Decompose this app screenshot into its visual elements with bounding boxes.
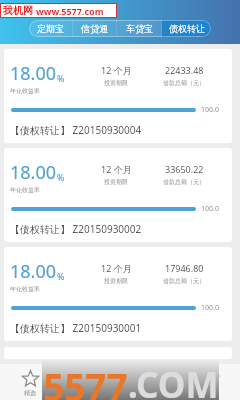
button[interactable]: 18.00 — [4, 49, 232, 143]
staticText: 借款总额（元） — [163, 178, 205, 186]
button[interactable]: 信贷通 — [73, 20, 116, 37]
staticText: 100.0 — [201, 204, 219, 214]
staticText: 12 个月 — [101, 64, 132, 76]
button[interactable]: 车贷宝 — [117, 20, 161, 37]
staticText: www.5577.com — [36, 5, 104, 17]
button[interactable]: 我的 — [180, 364, 240, 400]
staticText: 债权转让 — [169, 23, 205, 34]
staticText: .COM — [128, 361, 219, 400]
staticText: 我的 — [204, 389, 216, 397]
staticText: 车贷宝 — [126, 23, 153, 34]
staticText: % — [57, 171, 65, 183]
staticText: Z20150930001 — [70, 321, 142, 335]
staticText: 我机网 — [3, 4, 33, 17]
staticText: 12 个月 — [101, 163, 132, 175]
staticText: 定期宝 — [37, 23, 64, 34]
button[interactable]: 18.00 — [4, 148, 232, 242]
staticText: 年化收益率 — [10, 285, 40, 293]
button[interactable]: 18.00 — [4, 247, 232, 341]
other: 我的 — [202, 370, 219, 387]
button[interactable]: 精选 — [0, 364, 60, 400]
staticText: 年化收益率 — [10, 87, 40, 95]
staticText: 精选 — [24, 389, 36, 397]
staticText: Z20150930002 — [70, 222, 142, 236]
staticText: 投资期限 — [104, 277, 128, 285]
staticText: 【债权转让】 — [10, 124, 70, 137]
staticText: 发现 — [144, 389, 156, 397]
staticText: 33650.22 — [165, 163, 204, 175]
staticText: Z20150930004 — [70, 123, 142, 137]
other: 理财 — [82, 370, 99, 387]
staticText: 借款总额（元） — [163, 79, 205, 87]
staticText: 100.0 — [201, 105, 219, 115]
button[interactable]: 理财 — [60, 364, 120, 400]
staticText: 【债权转让】 — [10, 223, 70, 236]
staticText: 理财 — [84, 389, 96, 397]
staticText: 12 个月 — [101, 262, 132, 274]
staticText: 投资期限 — [104, 79, 128, 87]
other: 发现 — [142, 370, 159, 387]
staticText: 年化收益率 — [10, 186, 40, 194]
staticText: 22433.48 — [165, 64, 204, 76]
staticText: 【债权转让】 — [10, 322, 70, 335]
staticText: 投资期限 — [104, 178, 128, 186]
staticText: 18.00 — [10, 160, 57, 185]
staticText: 借款总额（元） — [163, 277, 205, 285]
staticText: 18.00 — [10, 61, 57, 86]
staticText: 5577 — [43, 361, 128, 400]
other: 精选 — [22, 370, 39, 387]
button[interactable]: 债权转让 — [162, 20, 211, 37]
staticText: 17946.80 — [165, 262, 204, 274]
staticText: % — [57, 72, 65, 84]
button[interactable]: 定期宝 — [29, 20, 72, 37]
staticText: 信贷通 — [81, 23, 108, 34]
staticText: % — [57, 270, 65, 282]
staticText: 100.0 — [201, 303, 219, 313]
button[interactable]: 发现 — [120, 364, 180, 400]
staticText: 18.00 — [10, 259, 57, 284]
